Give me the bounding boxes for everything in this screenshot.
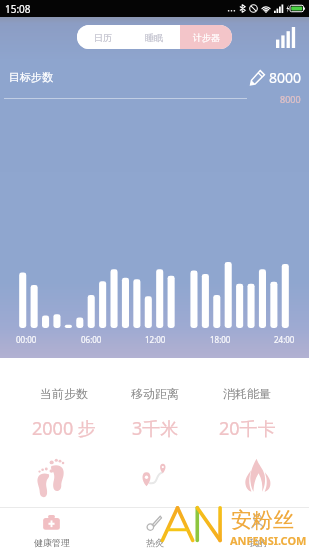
staticText: 我的 — [249, 537, 267, 548]
button[interactable]: 计步器 — [180, 25, 232, 49]
staticText: 健康管理 — [34, 537, 70, 548]
staticText: 20千卡 — [219, 416, 276, 441]
staticText: 热灸 — [146, 537, 164, 548]
staticText: 目标步数 — [9, 70, 53, 84]
staticText: 8000 — [280, 93, 301, 105]
staticText: 计步器 — [193, 32, 220, 43]
staticText: 00:00 — [16, 334, 37, 345]
staticText: 24:00 — [274, 334, 295, 345]
staticText: 日历 — [94, 32, 112, 43]
staticText: 15:08 — [5, 2, 31, 16]
staticText: 消耗能量 — [223, 386, 271, 401]
button[interactable]: 8000 — [250, 68, 302, 86]
staticText: ANFENSI.COM — [230, 533, 307, 548]
staticText: 8000 — [269, 68, 302, 86]
button[interactable]: 睡眠 — [128, 25, 180, 49]
staticText: 12:00 — [145, 334, 166, 345]
staticText: 2000 步 — [32, 416, 96, 441]
button[interactable]: 日历 — [77, 25, 128, 49]
staticText: 睡眠 — [145, 32, 163, 43]
button[interactable]: Health management — [0, 507, 103, 550]
staticText: 移动距离 — [131, 386, 179, 401]
staticText: 3千米 — [132, 416, 179, 441]
button[interactable]: Moxibustion — [103, 507, 206, 550]
button[interactable]: Profile — [206, 507, 309, 550]
button[interactable]: Statistics — [274, 25, 300, 49]
staticText: 06:00 — [81, 334, 102, 345]
staticText: 当前步数 — [40, 386, 88, 401]
staticText: 18:00 — [210, 334, 231, 345]
staticText: 安粉丝 — [231, 507, 294, 533]
